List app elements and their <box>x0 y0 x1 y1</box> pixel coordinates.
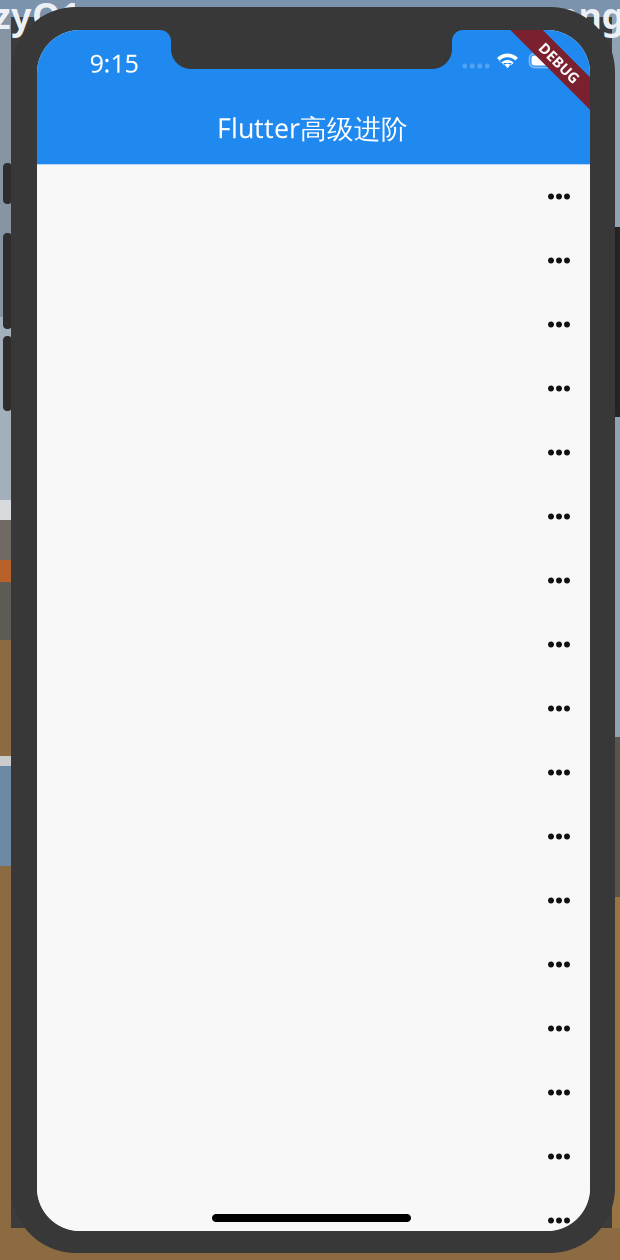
button[interactable]: More options <box>37 932 590 996</box>
button[interactable]: More options <box>37 164 590 228</box>
button[interactable]: More options <box>37 292 590 356</box>
button[interactable]: More options <box>37 1252 590 1260</box>
staticText: DEBUG <box>534 53 585 73</box>
button[interactable]: More options <box>37 1060 590 1124</box>
button[interactable]: More options <box>37 1188 590 1252</box>
button[interactable]: More options <box>37 484 590 548</box>
button[interactable]: More options <box>37 612 590 676</box>
staticText: 9:15 <box>89 46 138 80</box>
staticText: Flutter高级进阶 <box>217 110 408 146</box>
staticText: png <box>555 0 620 39</box>
button[interactable]: More options <box>37 420 590 484</box>
button[interactable]: More options <box>37 228 590 292</box>
button[interactable]: More options <box>37 996 590 1060</box>
button[interactable]: More options <box>37 740 590 804</box>
button[interactable]: More options <box>37 1124 590 1188</box>
button[interactable]: More options <box>37 804 590 868</box>
button[interactable]: More options <box>37 868 590 932</box>
button[interactable]: More options <box>37 676 590 740</box>
staticText: azyQ1 <box>0 0 81 39</box>
button[interactable]: More options <box>37 548 590 612</box>
button[interactable]: More options <box>37 356 590 420</box>
